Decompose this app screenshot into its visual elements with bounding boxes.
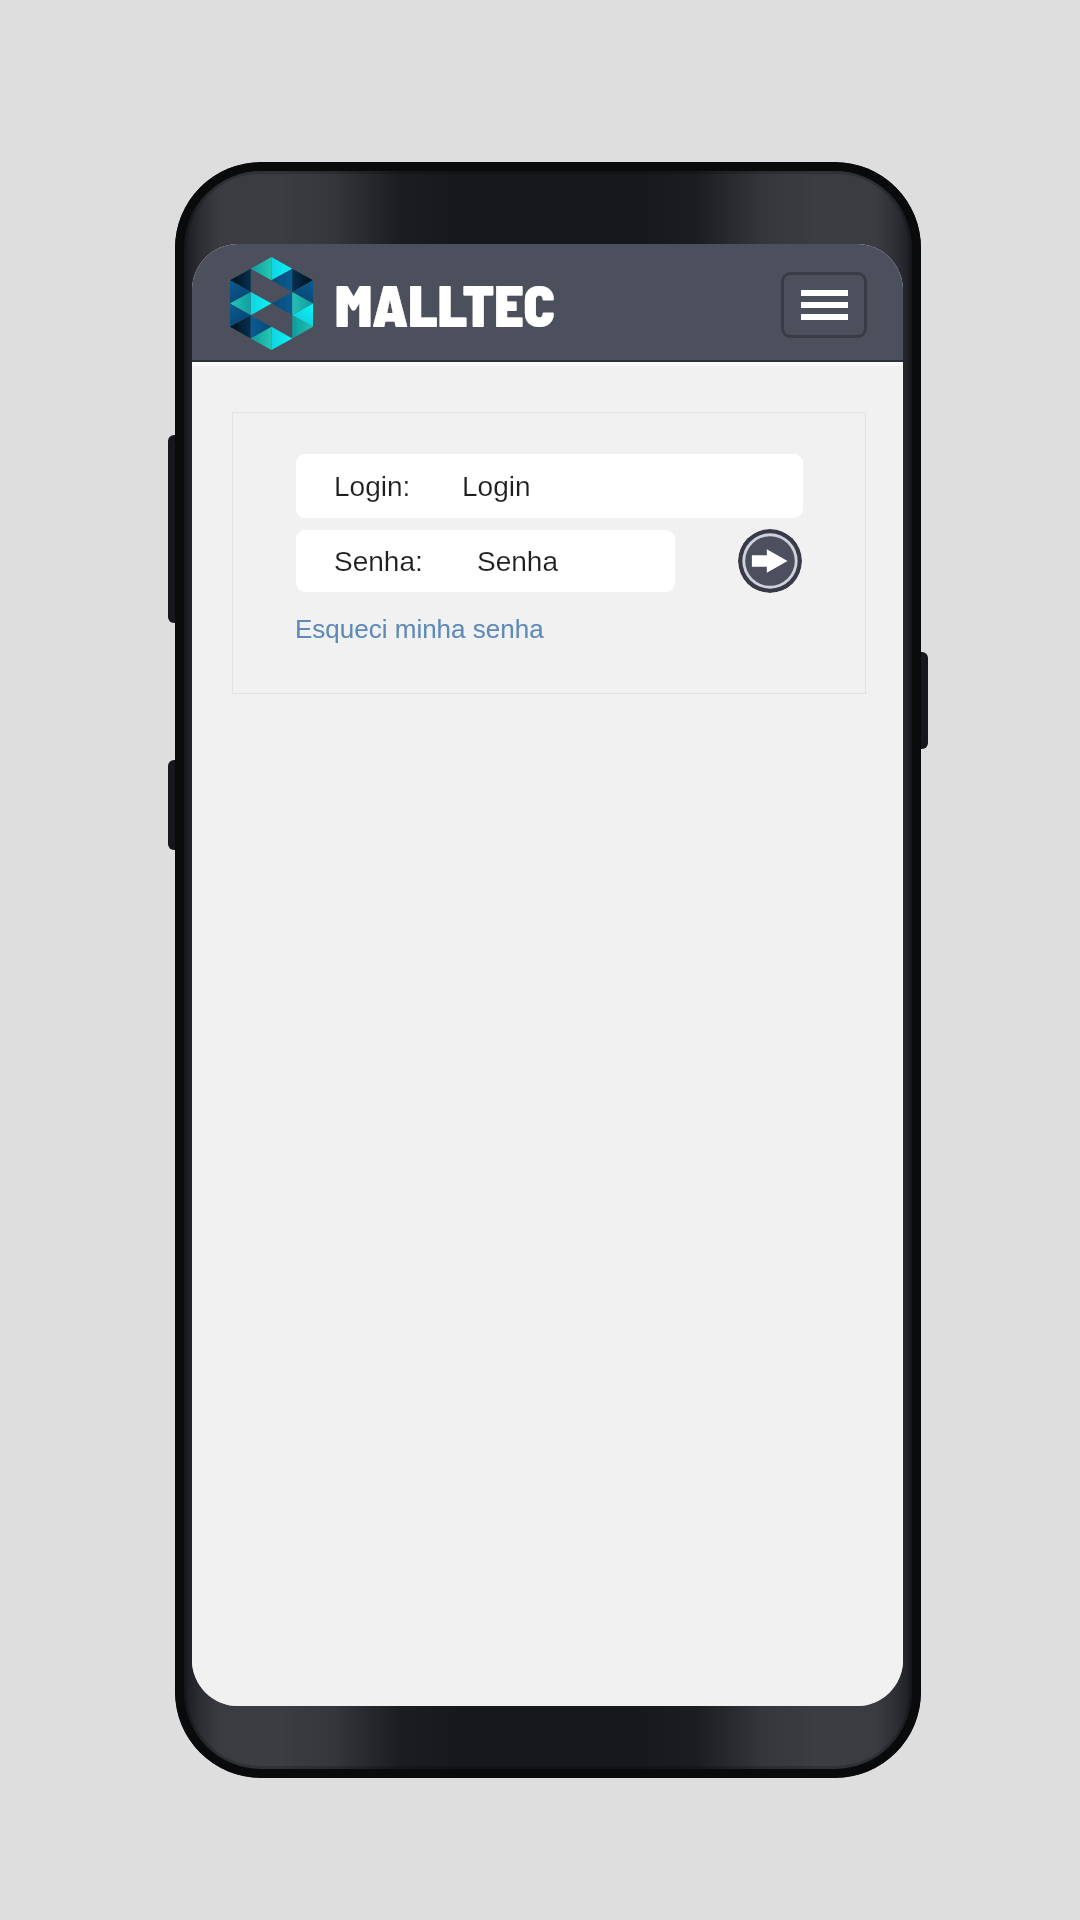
button[interactable]: Senha:	[296, 530, 675, 592]
staticText: Senha:	[334, 546, 423, 577]
staticText: Login	[462, 471, 531, 502]
staticText: Login:	[334, 471, 411, 502]
button[interactable]: Login:	[296, 454, 803, 518]
staticText: MALLTEC	[335, 269, 556, 339]
staticText: Senha	[477, 546, 558, 577]
staticText: Esqueci minha senha	[295, 614, 544, 643]
button[interactable]: Esqueci minha senha	[295, 614, 544, 643]
button[interactable]: Entrar	[738, 529, 802, 593]
button[interactable]: Abrir menu	[781, 272, 867, 338]
